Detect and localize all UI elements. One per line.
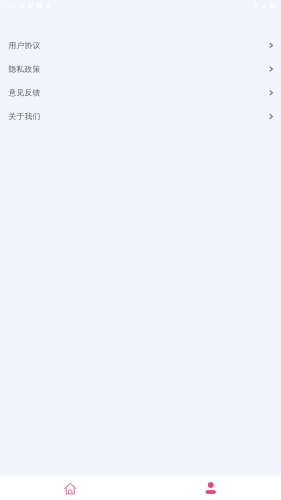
button[interactable]: 意见反馈 — [0, 81, 281, 105]
button[interactable]: Home — [0, 478, 140, 500]
button[interactable]: Profile — [140, 478, 281, 500]
button[interactable]: 隐私政策 — [0, 57, 281, 81]
button[interactable]: 用户协议 — [0, 33, 281, 57]
button[interactable]: 关于我们 — [0, 105, 281, 128]
staticText: 关于我们 — [9, 112, 41, 121]
staticText: 意见反馈 — [9, 88, 41, 98]
staticText: 用户协议 — [9, 40, 41, 50]
staticText: 隐私政策 — [9, 64, 41, 74]
